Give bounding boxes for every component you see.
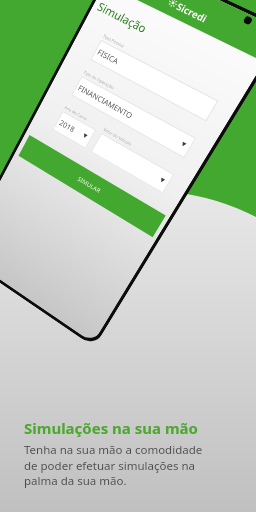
staticText: Simulações na sua mão	[24, 418, 198, 438]
button[interactable]: SIMULAR	[18, 135, 166, 237]
staticText: Tenha na sua mão a comodidade de poder e…	[24, 442, 203, 488]
staticText: Valor do Veículo	[102, 127, 133, 148]
other: Expandir	[159, 178, 165, 183]
button[interactable]: Expandir	[91, 133, 174, 194]
button[interactable]: FINANCIAMENTO	[71, 76, 196, 158]
other: Expandir	[181, 142, 186, 147]
button[interactable]: FISICA	[90, 40, 219, 121]
staticText: 2018	[58, 117, 77, 134]
staticText: Tipo de Operação	[82, 70, 115, 91]
staticText: Ano do Carro	[63, 105, 88, 122]
staticText: FISICA	[96, 47, 121, 66]
button[interactable]: 2018	[52, 111, 96, 149]
staticText: Simulação	[95, 0, 150, 36]
other: Expandir	[82, 133, 88, 139]
staticText: Tipo Pessoa	[101, 33, 125, 50]
staticText: Sicredi	[174, 0, 210, 25]
staticText: SIMULAR	[76, 175, 102, 195]
staticText: FINANCIAMENTO	[76, 82, 135, 121]
